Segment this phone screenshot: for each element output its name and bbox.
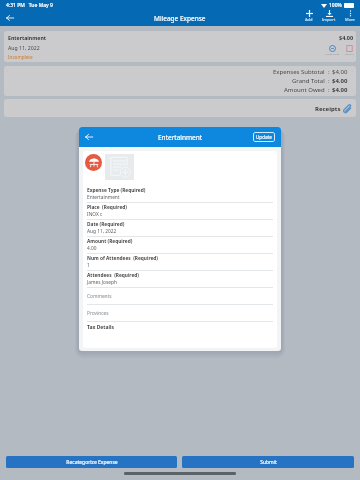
staticText: $4.00 <box>332 86 348 94</box>
button[interactable]: Receipts <box>4 99 356 117</box>
staticText: More <box>345 17 355 22</box>
staticText: Mileage Expense <box>154 14 206 23</box>
staticText: Amount (Required) <box>87 238 133 245</box>
button[interactable]: Amount (Required) <box>87 238 273 255</box>
staticText: Usage Code <box>325 52 340 55</box>
button[interactable]: Receipt <box>345 45 354 55</box>
staticText: Place (Required) <box>87 204 127 211</box>
staticText: Entertainment <box>158 133 203 142</box>
button[interactable]: Recategorize Expense <box>6 456 177 468</box>
staticText: : <box>328 86 330 94</box>
button[interactable]: Usage Code <box>325 45 340 55</box>
staticText: Recategorize Expense <box>66 459 118 466</box>
staticText: Add <box>305 17 313 22</box>
staticText: Import <box>322 17 336 22</box>
button[interactable]: Entertainment <box>4 31 356 62</box>
staticText: Update <box>256 134 272 140</box>
staticText: Incomplete <box>8 54 33 60</box>
staticText: Num of Attendees (Required) <box>87 255 158 262</box>
staticText: Aug 11, 2022 <box>87 228 117 235</box>
staticText: Comments <box>87 293 112 300</box>
button[interactable]: Comments <box>87 289 273 306</box>
staticText: Aug 11, 2022 <box>8 44 40 51</box>
staticText: Tax Details <box>87 324 114 331</box>
staticText: $4.00 <box>332 68 348 76</box>
button[interactable]: Add receipt <box>105 154 134 180</box>
staticText: Entertainment <box>87 194 120 201</box>
staticText: 1 <box>87 262 90 269</box>
staticText: : <box>328 77 330 85</box>
staticText: Expense Type (Required) <box>87 187 146 194</box>
staticText: James Joseph <box>87 279 117 286</box>
button[interactable]: Entertainment category <box>85 154 102 171</box>
button[interactable]: Attendees (Required) <box>87 272 273 289</box>
button[interactable]: Back <box>82 130 96 144</box>
button[interactable]: More <box>344 10 356 22</box>
staticText: Receipts <box>315 105 341 113</box>
button[interactable]: Add <box>304 10 314 22</box>
button[interactable]: Back <box>3 11 17 25</box>
staticText: Attendees (Required) <box>87 272 139 279</box>
staticText: INOX c <box>87 211 103 218</box>
button[interactable]: Num of Attendees (Required) <box>87 255 273 272</box>
staticText: Expenses Subtotal <box>273 68 325 76</box>
staticText: Amount Owed <box>284 86 325 94</box>
button[interactable]: Place (Required) <box>87 204 273 221</box>
button[interactable]: Provinces <box>87 306 273 323</box>
button[interactable]: Import <box>321 10 337 22</box>
staticText: : <box>328 68 330 76</box>
button[interactable]: Submit <box>182 456 354 468</box>
staticText: 4.00 <box>87 245 97 252</box>
staticText: 4:31 PM Tue May 9 <box>6 2 53 9</box>
staticText: Entertainment <box>8 34 47 41</box>
staticText: Submit <box>260 459 277 466</box>
staticText: Provinces <box>87 310 109 317</box>
button[interactable]: Date (Required) <box>87 221 273 238</box>
staticText: $4.00 <box>332 77 348 85</box>
staticText: Receipt <box>345 52 354 55</box>
button[interactable]: Update <box>253 132 275 142</box>
staticText: Grand Total <box>292 77 325 85</box>
staticText: 100% <box>329 2 342 9</box>
staticText: Date (Required) <box>87 221 125 228</box>
staticText: $4.00 <box>339 34 354 41</box>
button[interactable]: Expense Type (Required) <box>87 187 273 204</box>
